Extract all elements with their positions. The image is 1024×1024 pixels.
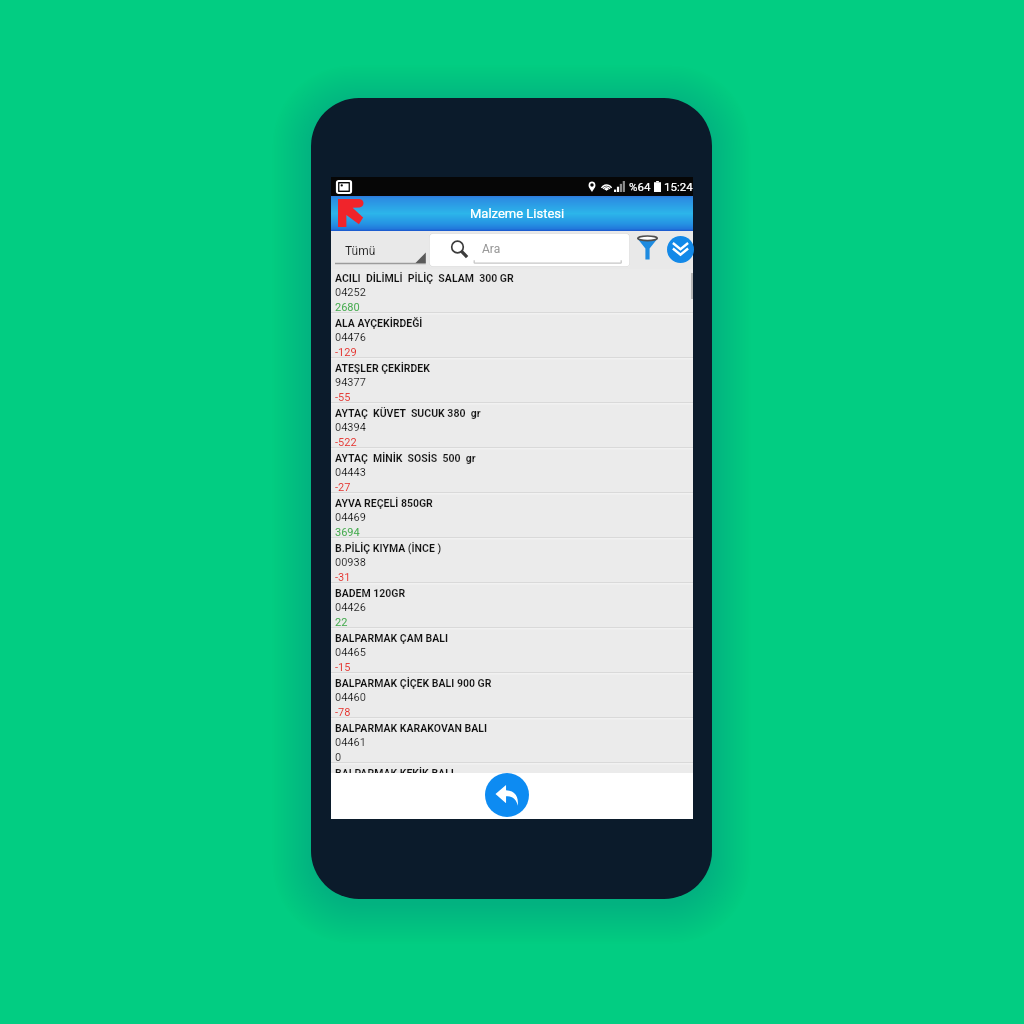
button[interactable]: AYTAÇ MİNİK SOSİS 500 gr [331,449,693,494]
staticText: 94377 [335,376,366,389]
staticText: 04461 [335,736,366,749]
button[interactable]: BALPARMAK ÇAM BALI [331,629,693,674]
staticText: BALPARMAK ÇİÇEK BALI 900 GR [335,677,492,689]
button[interactable]: Expand [667,236,694,263]
button[interactable]: Filter [634,233,660,263]
staticText: 04394 [335,421,366,434]
button[interactable]: Category filter: Tümü [335,231,427,269]
staticText: 04426 [335,601,366,614]
button[interactable]: Search field [429,233,630,267]
staticText: %64 [629,180,651,193]
staticText: 04252 [335,286,366,299]
staticText: AYTAÇ KÜVET SUCUK 380 gr [335,407,481,419]
staticText: Tümü [345,244,376,258]
button[interactable]: App logo [338,199,365,227]
staticText: 22 [335,616,348,629]
button[interactable]: AYVA REÇELİ 850GR [331,494,693,539]
staticText: -78 [335,706,351,719]
staticText: -129 [335,346,357,359]
staticText: Ara [482,242,501,256]
staticText: Malzeme Listesi [470,206,565,221]
staticText: 04469 [335,511,366,524]
staticText: 04443 [335,466,366,479]
staticText: 3694 [335,526,360,539]
button[interactable]: BADEM 120GR [331,584,693,629]
button[interactable]: B.PİLİÇ KIYMA (İNCE ) [331,539,693,584]
staticText: AYTAÇ MİNİK SOSİS 500 gr [335,452,476,464]
staticText: 04460 [335,691,366,704]
staticText: 0 [335,751,342,764]
button[interactable]: AYTAÇ KÜVET SUCUK 380 gr [331,404,693,449]
button[interactable]: Back [485,773,529,817]
staticText: -15 [335,661,351,674]
button[interactable]: ATEŞLER ÇEKİRDEK [331,359,693,404]
staticText: AYVA REÇELİ 850GR [335,497,433,509]
staticText: ACILI DİLİMLİ PİLİÇ SALAM 300 GR [335,272,514,284]
button[interactable]: ALA AYÇEKİRDEĞİ [331,314,693,359]
button[interactable]: BALPARMAK KARAKOVAN BALI [331,719,693,764]
staticText: BADEM 120GR [335,587,406,599]
staticText: 04476 [335,331,366,344]
staticText: 04465 [335,646,366,659]
button[interactable]: BALPARMAK KEKİK BALI [331,764,693,809]
button[interactable]: BALPARMAK ÇİÇEK BALI 900 GR [331,674,693,719]
staticText: BALPARMAK KEKİK BALI [335,767,454,779]
staticText: -522 [335,436,357,449]
staticText: BALPARMAK ÇAM BALI [335,632,448,644]
staticText: BALPARMAK KARAKOVAN BALI [335,722,487,734]
staticText: 00938 [335,556,366,569]
staticText: -31 [335,571,351,584]
staticText: -27 [335,481,351,494]
staticText: 15:24 [664,180,693,193]
staticText: B.PİLİÇ KIYMA (İNCE ) [335,542,442,554]
button[interactable]: ACILI DİLİMLİ PİLİÇ SALAM 300 GR [331,269,693,314]
staticText: ALA AYÇEKİRDEĞİ [335,317,423,329]
staticText: -55 [335,391,351,404]
staticText: ATEŞLER ÇEKİRDEK [335,362,430,374]
staticText: 2680 [335,301,360,314]
